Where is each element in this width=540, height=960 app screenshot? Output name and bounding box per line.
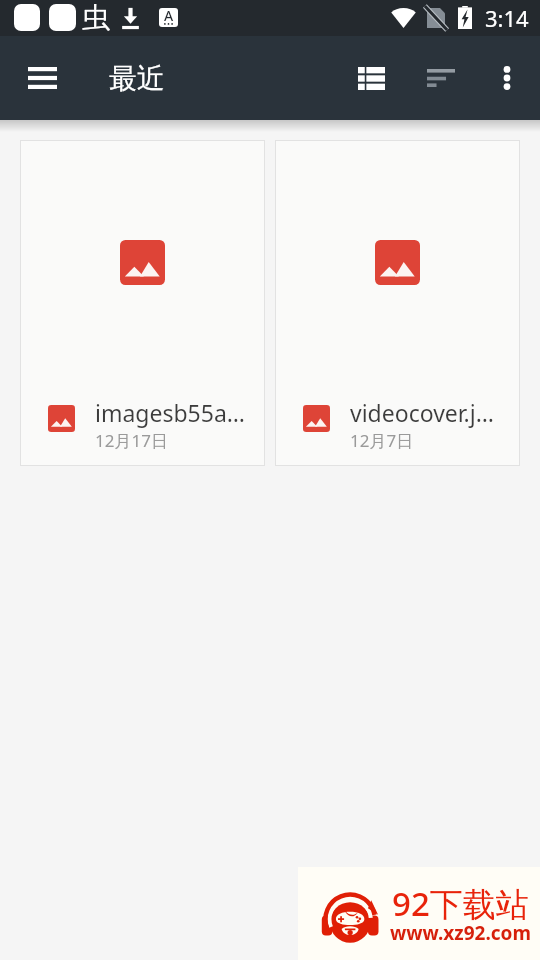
button[interactable]: Sort [406,43,476,113]
staticText: videocover.j… [350,397,494,428]
staticText: 12月7日 [350,429,414,452]
button[interactable]: Change view [336,43,406,113]
staticText: A [164,8,174,25]
staticText: 3:14 [485,3,529,33]
staticText: www.xz92.com [390,920,531,946]
button[interactable]: Open navigation drawer [0,36,84,120]
button[interactable]: imagesb55a… [21,141,264,465]
staticText: 最近 [109,61,165,96]
staticText: 92下载站 [392,881,529,926]
staticText: 虫 [82,0,110,35]
staticText: 12月17日 [95,429,168,452]
button[interactable]: More options [476,47,538,109]
staticText: imagesb55a… [95,397,246,428]
button[interactable]: videocover.j… [276,141,519,465]
